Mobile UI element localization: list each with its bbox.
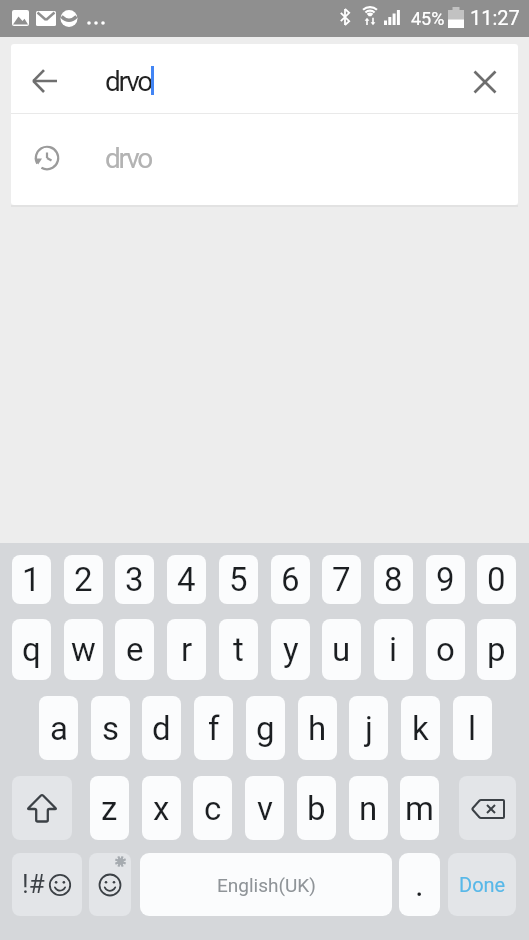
- button[interactable]: [11, 114, 518, 205]
- staticText: 45%: [411, 8, 445, 29]
- staticText: v: [257, 789, 273, 828]
- button[interactable]: h: [298, 696, 337, 760]
- button[interactable]: 5: [219, 555, 258, 604]
- button[interactable]: b: [297, 776, 336, 840]
- staticText: 3: [125, 560, 144, 599]
- staticText: 9: [436, 560, 455, 599]
- staticText: s: [102, 709, 120, 748]
- staticText: p: [487, 630, 506, 669]
- button[interactable]: 1: [12, 555, 51, 604]
- button[interactable]: g: [246, 696, 285, 760]
- button[interactable]: v: [245, 776, 284, 840]
- button[interactable]: r: [167, 619, 206, 680]
- button[interactable]: p: [477, 619, 516, 680]
- button[interactable]: a: [39, 696, 78, 760]
- button[interactable]: w: [64, 619, 103, 680]
- staticText: 6: [281, 560, 300, 599]
- button[interactable]: y: [271, 619, 310, 680]
- button[interactable]: l: [453, 696, 492, 760]
- staticText: u: [332, 630, 351, 669]
- button[interactable]: [21, 58, 69, 106]
- staticText: k: [412, 709, 429, 748]
- button[interactable]: 3: [115, 555, 154, 604]
- button[interactable]: n: [349, 776, 388, 840]
- staticText: c: [204, 789, 222, 828]
- staticText: y: [283, 630, 299, 669]
- button[interactable]: q: [12, 619, 51, 680]
- staticText: r: [181, 630, 193, 669]
- staticText: j: [365, 709, 373, 748]
- staticText: 11:27: [470, 6, 520, 29]
- button[interactable]: 2: [64, 555, 103, 604]
- button[interactable]: i: [374, 619, 413, 680]
- staticText: English(UK): [217, 874, 316, 896]
- button[interactable]: 8: [374, 555, 413, 604]
- staticText: b: [307, 789, 326, 828]
- button[interactable]: [89, 853, 131, 916]
- staticText: 1: [22, 560, 41, 599]
- staticText: a: [50, 709, 68, 748]
- button[interactable]: 7: [322, 555, 361, 604]
- staticText: 5: [229, 560, 248, 599]
- button[interactable]: z: [90, 776, 129, 840]
- button[interactable]: 9: [426, 555, 465, 604]
- staticText: o: [436, 630, 455, 669]
- button[interactable]: [461, 58, 509, 106]
- staticText: q: [22, 630, 41, 669]
- button[interactable]: c: [193, 776, 232, 840]
- staticText: f: [208, 709, 220, 748]
- staticText: x: [153, 789, 170, 828]
- button[interactable]: f: [194, 696, 233, 760]
- staticText: z: [101, 789, 118, 828]
- button[interactable]: m: [400, 776, 439, 840]
- staticText: 2: [74, 560, 93, 599]
- button[interactable]: !#: [12, 853, 82, 916]
- staticText: g: [256, 709, 275, 748]
- staticText: 7: [332, 560, 351, 599]
- button[interactable]: u: [322, 619, 361, 680]
- button[interactable]: [459, 776, 516, 840]
- button[interactable]: 0: [477, 555, 516, 604]
- staticText: m: [405, 789, 434, 828]
- button[interactable]: e: [115, 619, 154, 680]
- button[interactable]: j: [349, 696, 388, 760]
- button[interactable]: o: [426, 619, 465, 680]
- button[interactable]: [12, 776, 72, 840]
- button[interactable]: .: [399, 853, 440, 916]
- button[interactable]: t: [219, 619, 258, 680]
- button[interactable]: d: [142, 696, 181, 760]
- staticText: drvo: [105, 142, 152, 175]
- staticText: t: [233, 630, 244, 669]
- staticText: n: [359, 789, 378, 828]
- button[interactable]: k: [401, 696, 440, 760]
- staticText: e: [126, 630, 144, 669]
- staticText: h: [308, 709, 327, 748]
- staticText: drvo: [105, 65, 152, 98]
- staticText: 8: [384, 560, 403, 599]
- button[interactable]: 4: [167, 555, 206, 604]
- staticText: Done: [459, 873, 506, 896]
- staticText: l: [468, 709, 477, 748]
- button[interactable]: s: [91, 696, 130, 760]
- button[interactable]: Done: [448, 853, 516, 916]
- button[interactable]: English(UK): [140, 853, 392, 916]
- staticText: d: [152, 709, 171, 748]
- button[interactable]: 6: [271, 555, 310, 604]
- button[interactable]: x: [142, 776, 181, 840]
- staticText: !#: [22, 869, 45, 899]
- staticText: w: [71, 630, 96, 669]
- staticText: .: [415, 865, 424, 904]
- staticText: 0: [487, 560, 506, 599]
- staticText: 4: [177, 560, 196, 599]
- staticText: i: [389, 630, 398, 669]
